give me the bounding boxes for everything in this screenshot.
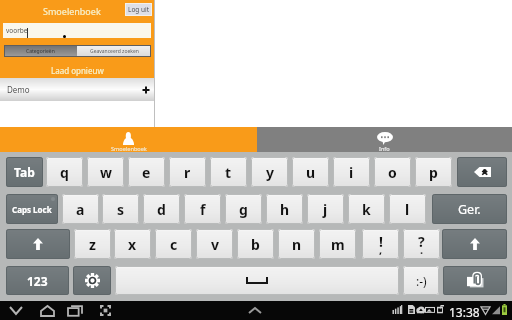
staticText: c — [170, 235, 178, 254]
staticText: 13:38 — [449, 304, 480, 320]
button[interactable]: v — [196, 229, 233, 259]
button[interactable]: j — [307, 194, 344, 224]
staticText: e — [142, 163, 151, 182]
button[interactable]: n — [278, 229, 315, 259]
button[interactable]: u — [292, 157, 329, 187]
button[interactable]: Back — [2, 301, 30, 320]
staticText: ! — [379, 232, 383, 251]
button[interactable]: :-) — [403, 266, 439, 295]
staticText: j — [323, 200, 328, 219]
staticText: u — [306, 163, 316, 182]
button[interactable]: z — [74, 229, 111, 259]
button[interactable]: Recent apps — [61, 301, 89, 320]
staticText: Tab — [14, 164, 35, 180]
button[interactable]: f — [184, 194, 221, 224]
staticText: g — [239, 200, 248, 219]
staticText: Laad opnieuw — [51, 65, 104, 76]
button[interactable]: x — [114, 229, 151, 259]
staticText: . — [420, 242, 424, 257]
button[interactable]: Space — [115, 266, 399, 295]
other: Shift — [33, 238, 43, 250]
button[interactable]: Geavanceerd zoeken — [77, 45, 151, 57]
button[interactable]: Attach — [443, 266, 507, 295]
button[interactable]: Ger. — [432, 194, 507, 224]
button[interactable]: Laad opnieuw — [0, 63, 154, 77]
button[interactable]: Smoelenboek — [0, 127, 257, 152]
button[interactable]: Caps Lock — [6, 194, 58, 224]
staticText: w — [100, 163, 112, 182]
button[interactable]: a — [62, 194, 99, 224]
button[interactable]: voorbe — [3, 23, 151, 38]
staticText: b — [251, 235, 260, 254]
button[interactable]: Info — [257, 127, 512, 152]
staticText: r — [184, 163, 191, 182]
button[interactable]: Home — [33, 301, 61, 320]
button[interactable]: 123 — [6, 266, 69, 295]
button[interactable]: Settings — [73, 266, 111, 295]
staticText: n — [292, 235, 302, 254]
staticText: i — [349, 163, 354, 182]
staticText: o — [388, 163, 397, 182]
staticText: v — [211, 235, 219, 254]
button[interactable]: r — [169, 157, 206, 187]
button[interactable]: Shift — [6, 229, 70, 259]
staticText: Geavanceerd zoeken — [90, 48, 139, 55]
button[interactable]: Screenshot — [91, 301, 119, 320]
staticText: x — [128, 235, 137, 254]
staticText: Smoelenboek — [43, 5, 101, 17]
staticText: Ger. — [458, 201, 481, 218]
other: Shift — [470, 238, 480, 250]
staticText: y — [266, 163, 274, 182]
staticText: 123 — [27, 273, 48, 289]
other: Settings — [85, 273, 100, 288]
button[interactable]: ! — [362, 229, 399, 259]
staticText: h — [280, 200, 290, 219]
button[interactable]: y — [251, 157, 288, 187]
staticText: Caps Lock — [12, 204, 52, 215]
button[interactable]: Log uit — [126, 4, 151, 15]
button[interactable]: Demo — [0, 78, 154, 101]
button[interactable]: t — [210, 157, 247, 187]
button[interactable]: s — [102, 194, 139, 224]
staticText: voorbe — [6, 26, 28, 35]
other: Attach — [467, 273, 484, 288]
button[interactable]: b — [237, 229, 274, 259]
button[interactable]: k — [348, 194, 385, 224]
button[interactable]: Categorieën — [4, 45, 77, 57]
button[interactable]: q — [46, 157, 83, 187]
staticText: Smoelenboek — [111, 145, 147, 153]
button[interactable]: Shift — [442, 229, 507, 259]
staticText: , — [379, 242, 383, 257]
staticText: f — [200, 200, 206, 219]
button[interactable]: h — [266, 194, 303, 224]
button[interactable]: m — [319, 229, 356, 259]
button[interactable]: Expand — [243, 301, 267, 320]
button[interactable]: ? — [403, 229, 440, 259]
button[interactable]: e — [128, 157, 165, 187]
other: Backspace — [474, 167, 491, 177]
button[interactable]: d — [143, 194, 180, 224]
staticText: Categorieën — [26, 48, 55, 55]
staticText: Info — [379, 145, 390, 153]
staticText: a — [76, 200, 85, 219]
button[interactable]: w — [87, 157, 124, 187]
button[interactable]: l — [389, 194, 426, 224]
button[interactable]: o — [374, 157, 411, 187]
staticText: t — [225, 163, 232, 182]
button[interactable]: p — [415, 157, 452, 187]
staticText: p — [429, 163, 438, 182]
other: Space — [115, 266, 399, 295]
staticText: :-) — [416, 273, 427, 289]
button[interactable]: i — [333, 157, 370, 187]
button[interactable]: Tab — [6, 157, 43, 187]
button[interactable]: Backspace — [457, 157, 507, 187]
staticText: l — [405, 200, 410, 219]
staticText: z — [89, 235, 96, 254]
staticText: ? — [418, 232, 425, 251]
staticText: Log uit — [128, 5, 150, 14]
button[interactable]: g — [225, 194, 262, 224]
staticText: k — [362, 200, 371, 219]
staticText: s — [117, 200, 125, 219]
staticText: q — [60, 163, 69, 182]
button[interactable]: c — [155, 229, 192, 259]
